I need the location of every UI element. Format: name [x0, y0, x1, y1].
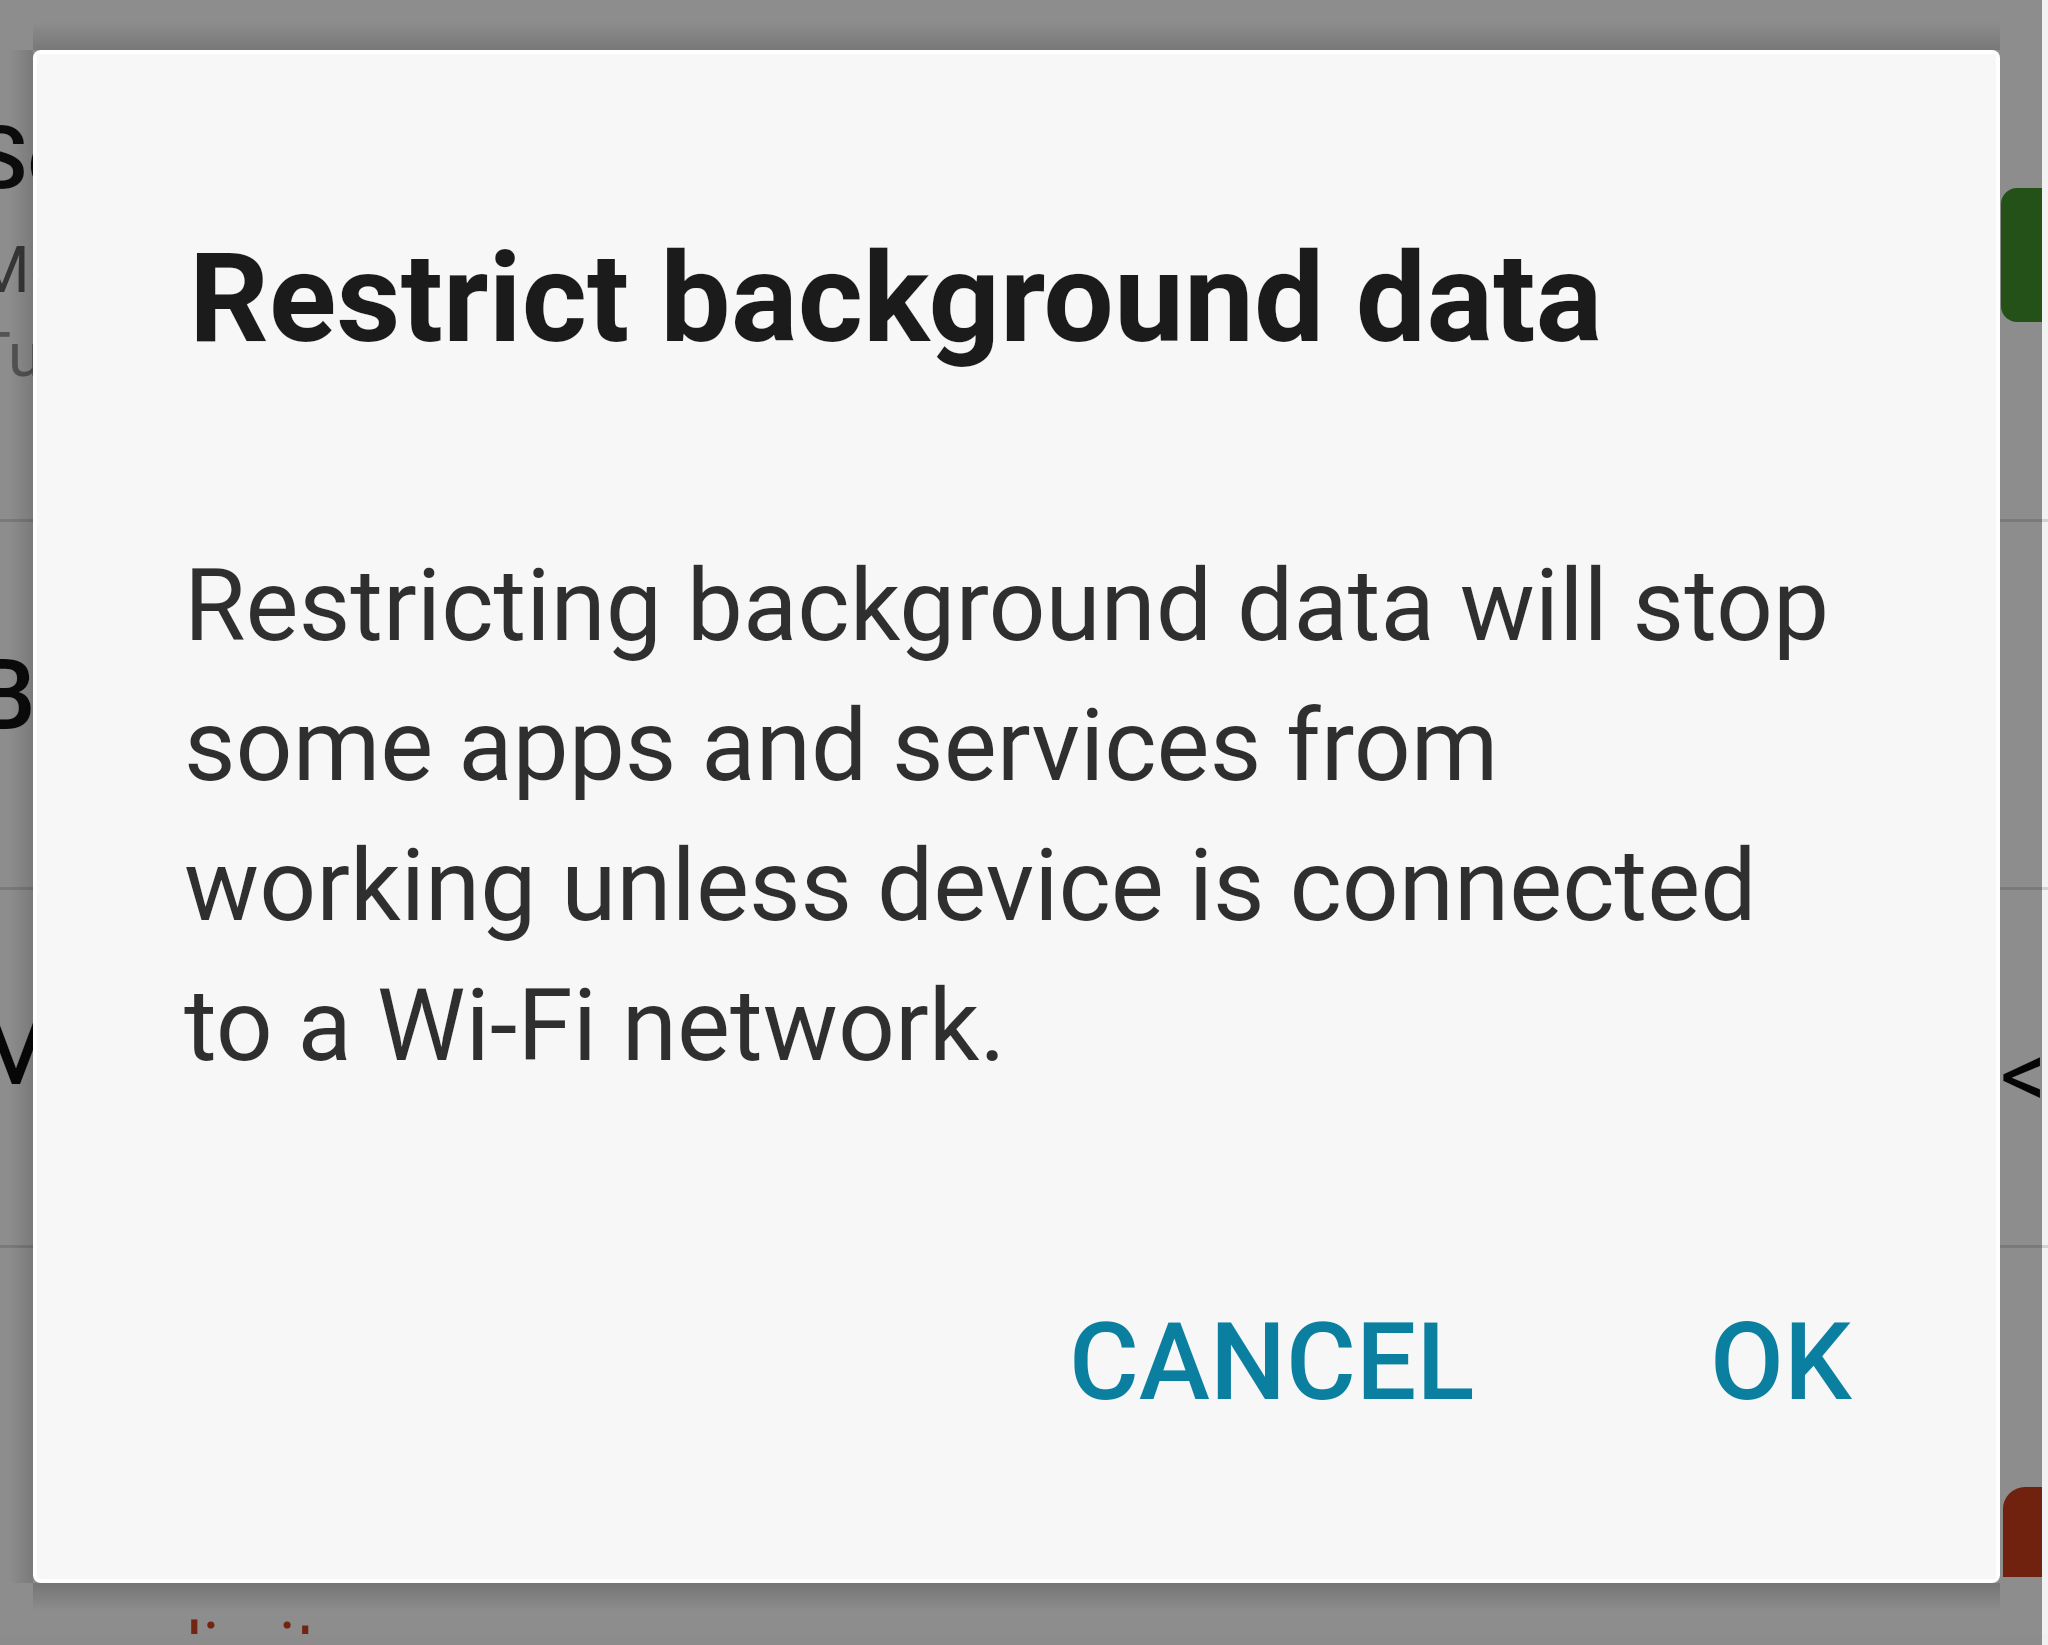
button[interactable]: CANCEL: [1029, 1276, 1515, 1449]
staticText: Restrict background data: [189, 225, 1603, 371]
staticText: OK: [1710, 1300, 1852, 1425]
staticText: Mobile data usage: [0, 995, 767, 1108]
staticText: Mobile data: [0, 233, 310, 308]
staticText: Restricting background data will stop so…: [184, 547, 1844, 1084]
staticText: CANCEL: [1069, 1300, 1475, 1425]
staticText: Turn on mobile data: [0, 318, 524, 391]
staticText: <|: [2000, 1022, 2048, 1130]
staticText: limit: [186, 1608, 318, 1645]
staticText: Background data: [0, 638, 718, 753]
button[interactable]: Dismiss dialog: [0, 0, 2042, 1645]
button[interactable]: OK: [1670, 1276, 1892, 1449]
staticText: Settings: [0, 106, 300, 209]
